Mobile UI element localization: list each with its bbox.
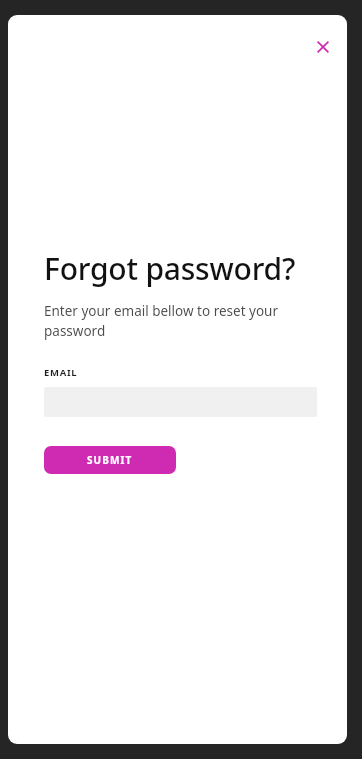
staticText: EMAIL xyxy=(44,366,78,379)
staticText: SUBMIT xyxy=(87,453,133,467)
staticText: Forgot password? xyxy=(44,248,296,289)
button[interactable]: Close xyxy=(309,33,337,61)
staticText: Enter your email bellow to reset your pa… xyxy=(44,302,317,340)
button[interactable]: SUBMIT xyxy=(44,446,176,474)
